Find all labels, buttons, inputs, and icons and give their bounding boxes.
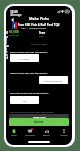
staticText: Lobby — [11, 134, 17, 137]
staticText: NBA • Multiple Games — [21, 27, 46, 30]
staticText: Prize Pool — [9, 34, 20, 37]
button[interactable]: Submit — [9, 118, 69, 126]
staticText: Make Picks — [6, 16, 72, 21]
button[interactable]: My Entries — [22, 128, 38, 138]
button[interactable]: Results — [38, 128, 55, 138]
button[interactable]: Account — [55, 128, 72, 138]
staticText: Which team will win the game? — [10, 71, 48, 74]
staticText: iMessage — [10, 13, 22, 17]
staticText: Account — [60, 134, 68, 137]
staticText: Submit — [34, 120, 44, 124]
staticText: Tie — [23, 99, 27, 102]
staticText: Clear Picks — [33, 115, 46, 118]
button[interactable]: Clear Picks — [9, 114, 69, 118]
staticText: PGM Pool Bonus — [44, 79, 63, 82]
staticText: $5,000 — [9, 30, 19, 34]
button[interactable]: Back — [8, 15, 17, 24]
staticText: Which team will win the game? — [10, 50, 48, 53]
staticText: Who will make the most points? — [10, 91, 49, 94]
staticText: LA Lakers — [19, 57, 30, 60]
staticText: 1:30 PM Today — [6, 42, 72, 45]
button[interactable]: Tie — [10, 96, 39, 104]
staticText: Results — [43, 134, 50, 137]
staticText: Free — [39, 31, 46, 35]
staticText: My Entries — [25, 134, 35, 137]
staticText: 15:35 — [10, 10, 18, 14]
staticText: Will the bonus and total made and missed… — [10, 111, 54, 114]
staticText: Free $5K Pick & Roll Pool TQ4 — [18, 23, 60, 27]
staticText: Entry — [39, 35, 45, 38]
button[interactable]: PGM Pool Bonus — [39, 76, 68, 84]
button[interactable]: Lobby — [6, 128, 22, 138]
button[interactable]: LA Lakers — [10, 54, 39, 62]
